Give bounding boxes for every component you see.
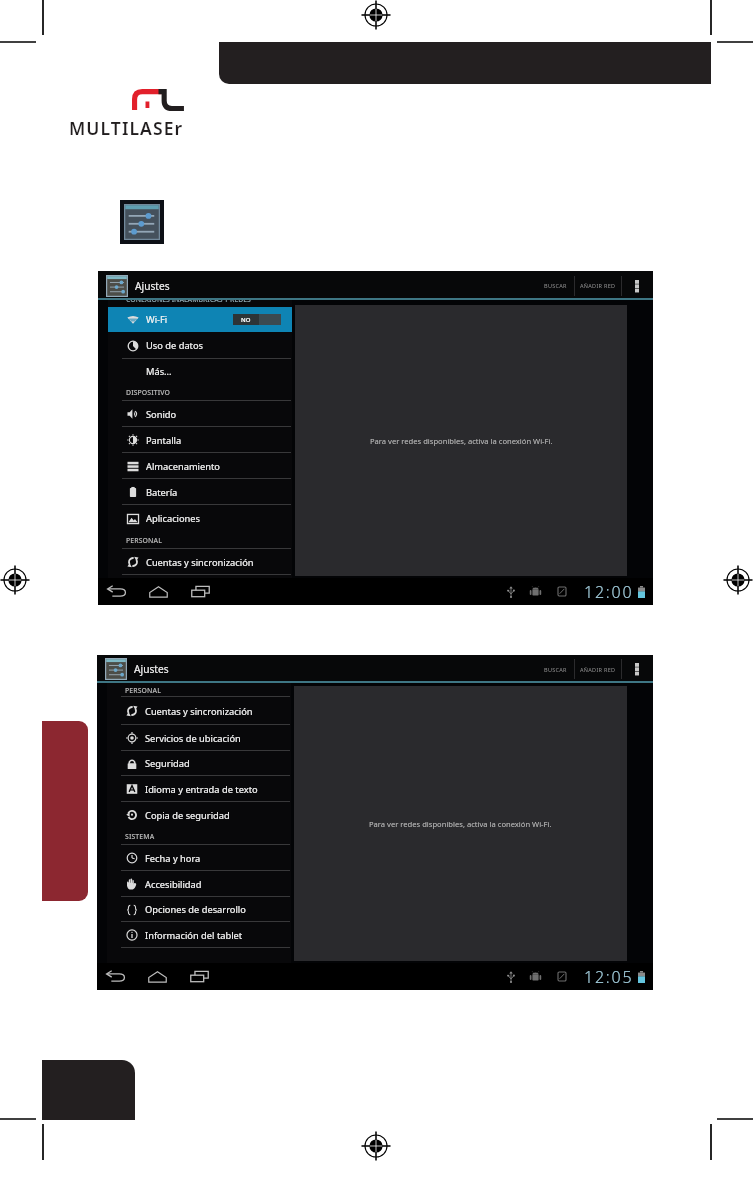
staticText: Pantalla <box>146 434 182 447</box>
button[interactable]: More options <box>629 661 645 677</box>
button[interactable]: Batería <box>108 479 292 505</box>
button[interactable]: Sonido <box>108 401 292 427</box>
staticText: Almacenamiento <box>146 460 220 473</box>
staticText: Idioma y entrada de texto <box>145 783 258 796</box>
button[interactable]: Back <box>102 578 130 605</box>
button[interactable]: Servicios de ubicación <box>107 725 291 751</box>
button[interactable]: Almacenamiento <box>108 453 292 479</box>
button[interactable]: Home <box>144 578 172 605</box>
button[interactable]: Back <box>101 963 129 990</box>
staticText: Cuentas y sincronización <box>145 705 253 718</box>
staticText: Cuentas y sincronización <box>146 556 254 569</box>
button[interactable]: NO <box>233 314 281 325</box>
button[interactable]: AÑADIR RED <box>580 666 616 673</box>
staticText: Ajustes <box>134 662 169 676</box>
button[interactable]: Cuentas y sincronización <box>108 549 292 575</box>
staticText: Servicios de ubicación <box>145 732 241 745</box>
button[interactable]: Opciones de desarrollo <box>107 897 291 922</box>
button[interactable]: Fecha y hora <box>107 845 291 871</box>
button[interactable]: Recent apps <box>185 963 213 990</box>
staticText: NO <box>241 316 251 324</box>
button[interactable]: Seguridad <box>107 751 291 776</box>
button[interactable]: Wi-Fi <box>108 307 292 332</box>
button[interactable]: More options <box>629 278 645 294</box>
staticText: Para ver redes disponibles, activa la co… <box>370 436 553 446</box>
staticText: PERSONAL <box>126 536 162 545</box>
button[interactable]: Idioma y entrada de texto <box>107 776 291 802</box>
staticText: Opciones de desarrollo <box>145 903 246 916</box>
button[interactable]: Cuentas y sincronización <box>107 697 291 725</box>
staticText: Aplicaciones <box>146 512 201 525</box>
button[interactable]: Más... <box>108 359 292 383</box>
staticText: MULTILASEr <box>69 116 184 140</box>
staticText: Sonido <box>146 408 177 421</box>
button[interactable]: Home <box>143 963 171 990</box>
button[interactable]: AÑADIR RED <box>580 282 616 289</box>
staticText: SISTEMA <box>125 832 155 841</box>
staticText: PERSONAL <box>125 686 161 695</box>
staticText: Ajustes <box>135 279 170 293</box>
staticText: 12:05 <box>584 966 634 988</box>
staticText: Accesibilidad <box>145 878 202 891</box>
button[interactable]: Aplicaciones <box>108 505 292 532</box>
staticText: 12:00 <box>584 581 634 603</box>
staticText: DISPOSITIVO <box>126 388 171 397</box>
staticText: Copia de seguridad <box>145 809 230 822</box>
button[interactable]: Recent apps <box>186 578 214 605</box>
staticText: Información del tablet <box>145 929 243 942</box>
button[interactable]: Accesibilidad <box>107 871 291 897</box>
button[interactable]: Información del tablet <box>107 922 291 948</box>
staticText: Uso de datos <box>146 339 204 352</box>
button[interactable]: BUSCAR <box>544 666 567 673</box>
button[interactable]: BUSCAR <box>544 282 567 289</box>
staticText: Para ver redes disponibles, activa la co… <box>369 819 552 829</box>
staticText: Batería <box>146 486 178 499</box>
button[interactable]: Uso de datos <box>108 332 292 359</box>
staticText: CONEXIONES INALÁMBRICAS Y REDES <box>126 300 251 302</box>
staticText: Seguridad <box>145 757 190 770</box>
staticText: Fecha y hora <box>145 852 201 865</box>
staticText: Más... <box>146 365 172 378</box>
button[interactable]: Copia de seguridad <box>107 802 291 828</box>
button[interactable]: Pantalla <box>108 427 292 453</box>
staticText: Wi-Fi <box>146 313 168 326</box>
